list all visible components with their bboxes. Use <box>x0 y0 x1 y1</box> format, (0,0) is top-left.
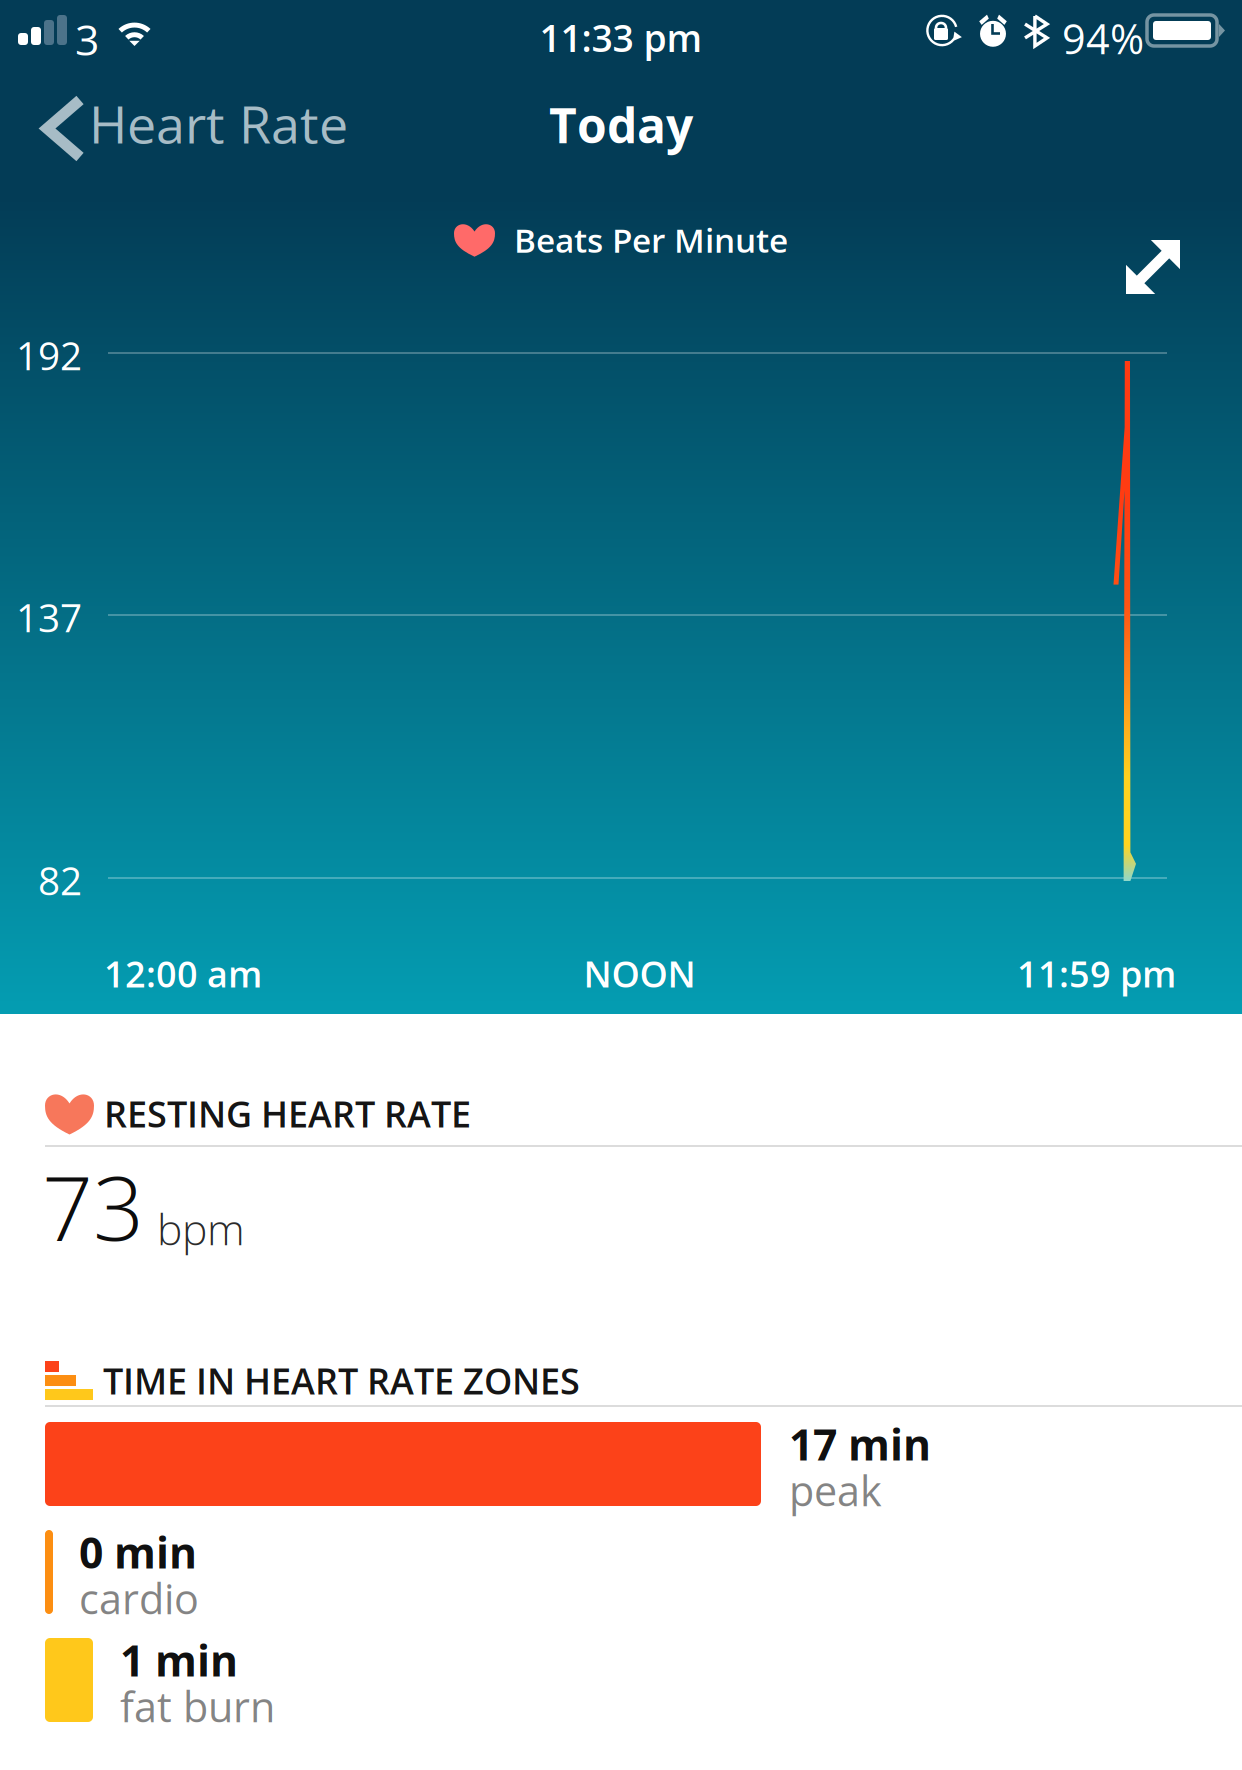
staticText: 11:33 pm <box>539 12 702 63</box>
staticText: 94% <box>1062 10 1144 66</box>
staticText: NOON <box>583 949 695 998</box>
staticText: fat burn <box>120 1678 275 1734</box>
staticText: TIME IN HEART RATE ZONES <box>103 1356 580 1405</box>
staticText: 192 <box>16 329 82 382</box>
staticText: RESTING HEART RATE <box>104 1089 471 1138</box>
staticText: Beats Per Minute <box>514 217 788 262</box>
button[interactable]: Heart Rate <box>0 66 380 166</box>
staticText: cardio <box>79 1570 199 1626</box>
staticText: 3 <box>75 10 99 68</box>
staticText: 82 <box>38 854 82 907</box>
staticText: peak <box>789 1462 882 1518</box>
staticText: Heart Rate <box>89 88 348 159</box>
staticText: 137 <box>16 591 82 644</box>
staticText: 0 min <box>79 1523 197 1581</box>
staticText: 1 min <box>120 1631 238 1689</box>
staticText: 12:00 am <box>104 949 262 998</box>
staticText: 73 <box>42 1145 144 1267</box>
staticText: bpm <box>157 1200 245 1258</box>
staticText: Today <box>549 92 693 157</box>
staticText: 11:59 pm <box>1017 949 1176 998</box>
staticText: 17 min <box>789 1415 931 1473</box>
button[interactable]: Expand chart <box>1094 214 1242 320</box>
